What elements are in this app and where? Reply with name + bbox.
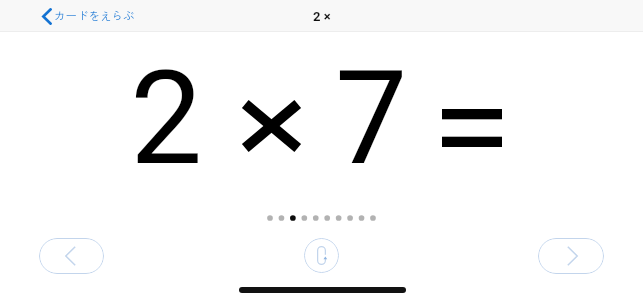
button[interactable]: カードをえらぶ xyxy=(39,3,138,28)
button[interactable]: Repeat deck xyxy=(304,238,339,273)
staticText: 2 × xyxy=(313,9,331,24)
staticText: カードをえらぶ xyxy=(54,7,135,24)
button[interactable]: Next card xyxy=(538,238,604,274)
staticText: 7 xyxy=(335,43,408,194)
button[interactable]: Previous card xyxy=(39,238,104,274)
button[interactable]: Flash card: 2 times 7 equals xyxy=(0,32,643,228)
staticText: 2 xyxy=(130,43,203,194)
